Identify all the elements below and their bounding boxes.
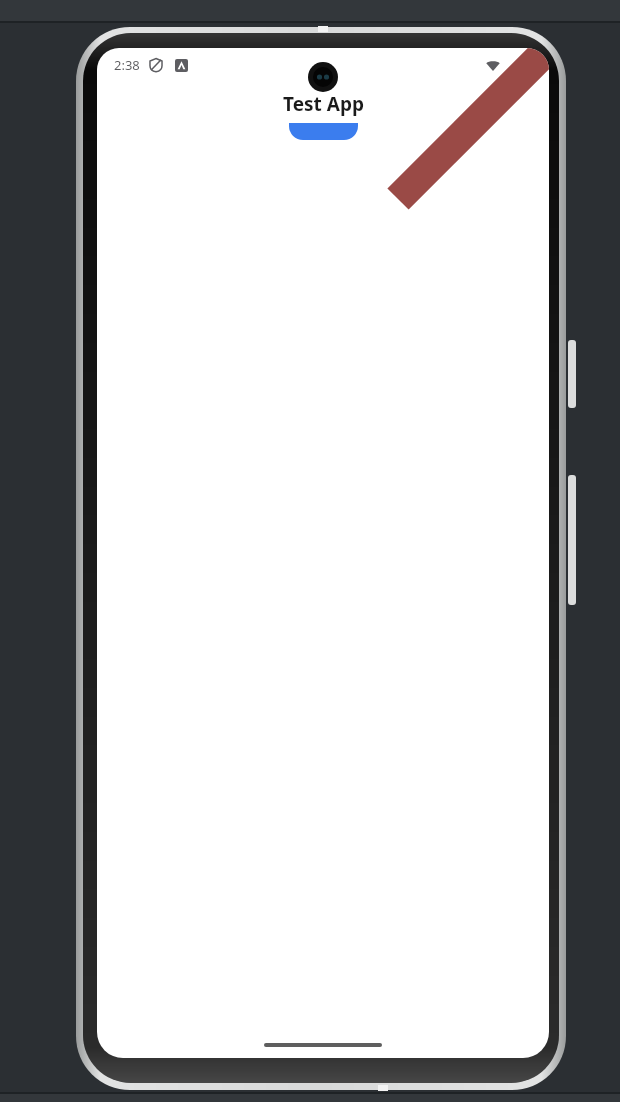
button[interactable]: Action	[289, 123, 358, 140]
staticText: 2:38	[114, 56, 140, 74]
staticText: Test App	[283, 91, 364, 117]
